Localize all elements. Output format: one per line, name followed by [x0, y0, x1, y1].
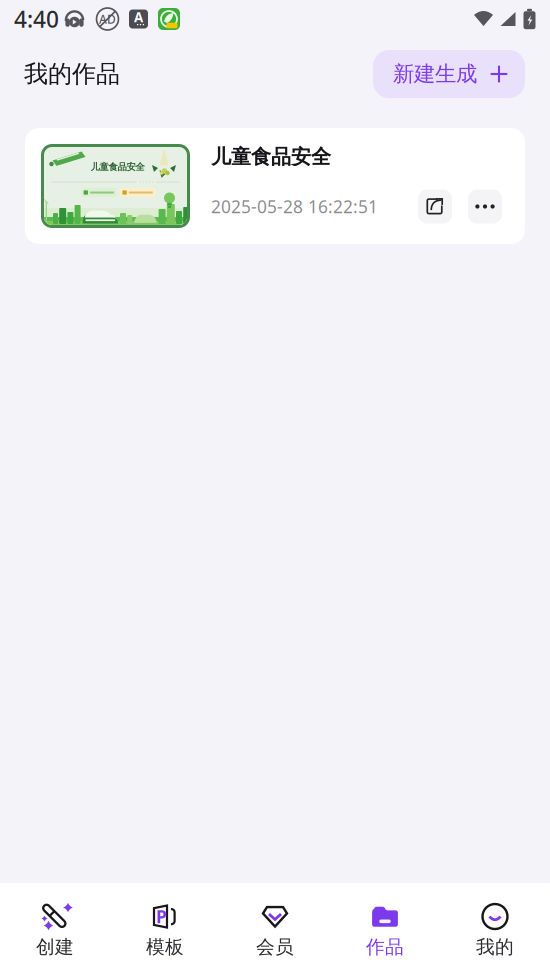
staticText: A — [134, 8, 143, 26]
staticText: 儿童食品安全 — [211, 144, 331, 169]
staticText: 创建 — [36, 935, 74, 958]
staticText: AD — [99, 11, 116, 27]
staticText: 4:40 — [14, 4, 59, 34]
staticText: 儿童食品安全 — [90, 161, 144, 173]
button[interactable]: 创建 — [0, 891, 110, 968]
staticText: 我的作品 — [24, 59, 120, 89]
staticText: 我的 — [476, 935, 514, 958]
button[interactable]: More options — [468, 189, 502, 223]
staticText: 模板 — [146, 935, 184, 958]
button[interactable]: P — [110, 891, 220, 968]
staticText: 2025-05-28 16:22:51 — [211, 195, 378, 218]
button[interactable]: 儿童食品安全 — [25, 128, 525, 244]
button[interactable]: 会员 — [220, 891, 330, 968]
button[interactable]: Share — [418, 189, 452, 223]
button[interactable]: 我的 — [440, 891, 550, 968]
staticText: 会员 — [256, 935, 294, 958]
button[interactable]: 新建生成 — [373, 50, 525, 98]
staticText: P — [156, 905, 167, 928]
button[interactable]: 作品 — [330, 891, 440, 968]
staticText: 作品 — [366, 935, 404, 958]
staticText: 新建生成 — [393, 61, 477, 87]
